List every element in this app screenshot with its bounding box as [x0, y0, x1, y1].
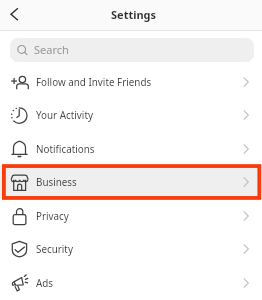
button[interactable]: Your Activity — [0, 98, 262, 132]
button[interactable]: Ads — [0, 266, 262, 300]
staticText: Settings — [111, 7, 157, 22]
staticText: Search — [34, 42, 69, 57]
staticText: Security — [36, 242, 73, 255]
staticText: Privacy — [36, 209, 69, 222]
button[interactable]: Follow and Invite Friends — [0, 65, 262, 99]
button[interactable]: Back — [2, 2, 28, 28]
staticText: Business — [36, 175, 77, 188]
button[interactable]: Notifications — [0, 132, 262, 166]
staticText: Follow and Invite Friends — [36, 75, 152, 88]
button[interactable]: Search — [10, 38, 254, 62]
staticText: Notifications — [36, 142, 95, 155]
button[interactable]: Privacy — [0, 199, 262, 233]
button[interactable]: Business — [0, 165, 262, 199]
staticText: Your Activity — [36, 108, 93, 121]
staticText: Ads — [36, 276, 54, 289]
button[interactable]: Security — [0, 232, 262, 266]
